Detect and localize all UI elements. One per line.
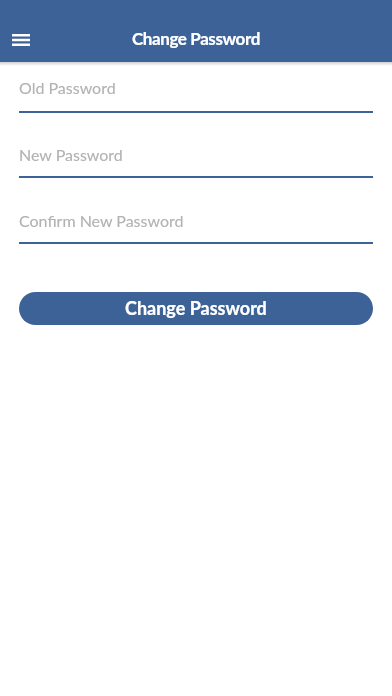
staticText: Change Password — [125, 297, 267, 319]
staticText: Old Password — [19, 78, 116, 97]
button[interactable]: Old Password — [19, 78, 373, 113]
button[interactable]: Change Password — [19, 292, 373, 325]
button[interactable] — [2, 21, 40, 59]
button[interactable]: New Password — [19, 145, 373, 178]
staticText: Confirm New Password — [19, 211, 184, 230]
staticText: Change Password — [132, 28, 260, 48]
staticText: New Password — [19, 145, 123, 164]
button[interactable]: Confirm New Password — [19, 211, 373, 244]
